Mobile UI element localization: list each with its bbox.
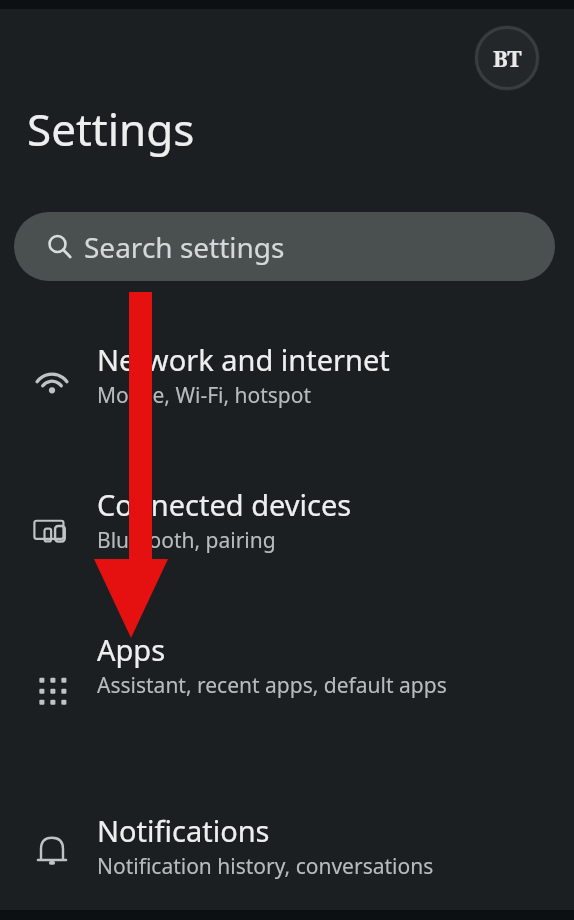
staticText: Assistant, recent apps, default apps	[97, 671, 447, 700]
staticText: Notifications	[97, 811, 270, 850]
button[interactable]: Search settings	[14, 212, 555, 281]
button[interactable]: Connected devices	[0, 474, 574, 578]
staticText: Apps	[97, 630, 166, 669]
staticText: Bluetooth, pairing	[97, 526, 276, 555]
button[interactable]: Network and internet	[0, 329, 574, 433]
button[interactable]: Notifications	[0, 800, 574, 904]
staticText: Notification history, conversations	[97, 852, 434, 881]
button[interactable]: Account avatar BT	[474, 25, 540, 91]
button[interactable]: Apps	[0, 619, 574, 723]
staticText: Network and internet	[97, 340, 390, 379]
staticText: BT	[493, 43, 522, 73]
staticText: Search settings	[84, 228, 285, 266]
staticText: Settings	[27, 99, 195, 159]
staticText: Connected devices	[97, 485, 352, 524]
staticText: Mobile, Wi-Fi, hotspot	[97, 381, 312, 410]
